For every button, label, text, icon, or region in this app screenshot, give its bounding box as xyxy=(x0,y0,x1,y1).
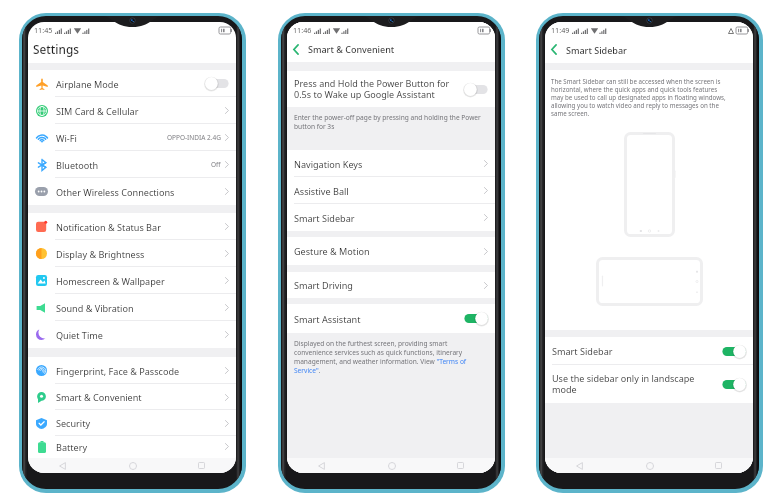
staticText: Wi-Fi xyxy=(56,132,77,144)
staticText: Smart Sidebar xyxy=(294,212,355,224)
button[interactable]: Smart Driving xyxy=(287,272,495,298)
staticText: Settings xyxy=(33,41,79,57)
button[interactable]: Other Wireless Connections xyxy=(28,178,236,205)
staticText: Battery xyxy=(56,441,88,453)
button[interactable]: Wi-Fi xyxy=(28,124,236,151)
staticText: Airplane Mode xyxy=(56,78,119,90)
staticText: Other Wireless Connections xyxy=(56,186,175,198)
staticText: Displayed on the furthest screen, provid… xyxy=(294,339,467,375)
staticText: Smart & Convenient xyxy=(56,391,142,403)
staticText: Gesture & Motion xyxy=(294,245,370,257)
button[interactable]: Toggle xyxy=(205,77,229,90)
button[interactable]: Home xyxy=(126,459,139,472)
button[interactable]: Recents xyxy=(712,459,725,472)
button[interactable]: Battery xyxy=(28,436,236,457)
staticText: Notification & Status Bar xyxy=(56,221,161,233)
staticText: Display & Brightness xyxy=(56,248,145,260)
staticText: Homescreen & Wallpaper xyxy=(56,275,165,287)
button[interactable]: Navigation Keys xyxy=(287,150,495,177)
staticText: Assistive Ball xyxy=(294,185,349,197)
button[interactable]: Recents xyxy=(454,459,467,472)
button[interactable]: Fingerprint, Face & Passcode xyxy=(28,357,236,384)
button[interactable]: Back xyxy=(56,459,69,472)
staticText: Smart Assistant xyxy=(294,313,361,325)
button[interactable]: Notification & Status Bar xyxy=(28,213,236,240)
staticText: OPPO-INDIA 2.4G xyxy=(167,133,221,142)
staticText: The Smart Sidebar can still be accessed … xyxy=(551,77,726,117)
staticText: 11:49 xyxy=(551,25,570,35)
button[interactable]: Toggle xyxy=(464,312,488,325)
staticText: Use the sidebar only in landscape mode xyxy=(552,372,722,396)
staticText: Smart Sidebar xyxy=(552,345,613,357)
button[interactable]: Back xyxy=(573,459,586,472)
button[interactable]: Smart Assistant xyxy=(287,304,495,333)
button[interactable]: Toggle xyxy=(722,345,746,358)
staticText: 11:45 xyxy=(34,25,53,35)
button[interactable]: Assistive Ball xyxy=(287,177,495,204)
button[interactable]: Sound & Vibration xyxy=(28,294,236,321)
button[interactable]: Use the sidebar only in landscape mode xyxy=(552,365,746,403)
staticText: Enter the power-off page by pressing and… xyxy=(294,113,481,131)
staticText: Navigation Keys xyxy=(294,158,363,170)
button[interactable]: Press and Hold the Power Button for 0.5s… xyxy=(287,71,495,107)
staticText: Smart Sidebar xyxy=(566,44,627,56)
button[interactable]: Home xyxy=(385,459,398,472)
button[interactable]: Home xyxy=(643,459,656,472)
staticText: Sound & Vibration xyxy=(56,302,134,314)
button[interactable]: Recents xyxy=(195,459,208,472)
staticText: Fingerprint, Face & Passcode xyxy=(56,365,180,377)
button[interactable]: Airplane Mode xyxy=(28,70,236,97)
staticText: Off xyxy=(211,160,221,169)
button[interactable]: Smart & Convenient xyxy=(28,384,236,410)
button[interactable]: Back xyxy=(289,43,302,56)
button[interactable]: Gesture & Motion xyxy=(287,237,495,265)
staticText: 11:46 xyxy=(293,25,312,35)
staticText: Bluetooth xyxy=(56,159,99,171)
staticText: SIM Card & Cellular xyxy=(56,105,139,117)
button[interactable]: Security xyxy=(28,410,236,436)
staticText: Smart & Convenient xyxy=(308,43,395,55)
button[interactable]: Quiet Time xyxy=(28,321,236,348)
button[interactable]: Back xyxy=(315,459,328,472)
button[interactable]: Bluetooth xyxy=(28,151,236,178)
button[interactable]: Display & Brightness xyxy=(28,240,236,267)
button[interactable]: Toggle xyxy=(722,378,746,391)
button[interactable]: Smart Sidebar xyxy=(545,337,753,365)
staticText: Smart Driving xyxy=(294,279,353,291)
button[interactable]: SIM Card & Cellular xyxy=(28,97,236,124)
staticText: Security xyxy=(56,417,91,429)
button[interactable]: Homescreen & Wallpaper xyxy=(28,267,236,294)
staticText: Quiet Time xyxy=(56,329,103,341)
button[interactable]: Smart Sidebar xyxy=(287,204,495,231)
button[interactable]: Toggle xyxy=(464,83,488,96)
staticText: Press and Hold the Power Button for 0.5s… xyxy=(294,77,458,101)
button[interactable]: Back xyxy=(547,43,560,56)
